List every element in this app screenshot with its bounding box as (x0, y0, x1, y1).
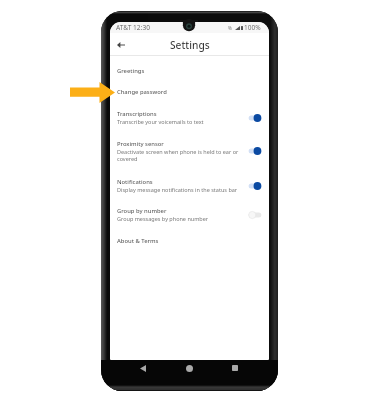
staticText: Deactivate screen when phone is held to … (117, 148, 244, 162)
staticText: Group messages by phone number (117, 215, 209, 222)
button[interactable]: Notifications (110, 176, 269, 195)
staticText: % (228, 25, 232, 31)
button[interactable]: Group by number (110, 205, 269, 224)
staticText: Settings (170, 38, 210, 52)
staticText: Transcribe your voicemails to text (117, 118, 204, 125)
button[interactable]: Change password (110, 82, 269, 102)
staticText: Group by number (117, 207, 167, 215)
staticText: Transcriptions (117, 110, 157, 118)
button[interactable]: Toggle (247, 113, 263, 123)
staticText: Display message notifications in the sta… (117, 186, 238, 193)
button[interactable]: Greetings (110, 61, 269, 81)
button[interactable]: Back (114, 38, 128, 52)
button[interactable]: Proximity sensor (110, 138, 269, 164)
staticText: Notifications (117, 178, 153, 186)
button[interactable]: Toggle (247, 210, 263, 220)
staticText: Change password (117, 88, 167, 96)
button[interactable]: Back (138, 363, 148, 373)
button[interactable]: About & Terms (110, 231, 269, 251)
staticText: Proximity sensor (117, 140, 164, 148)
staticText: Greetings (117, 67, 145, 75)
button[interactable]: Toggle (247, 146, 263, 156)
staticText: About & Terms (117, 237, 159, 245)
button[interactable]: Toggle (247, 181, 263, 191)
button[interactable]: Home (184, 363, 194, 373)
staticText: 100% (244, 23, 261, 32)
button[interactable]: Transcriptions (110, 108, 269, 127)
staticText: AT&T 12:30 (116, 23, 150, 32)
button[interactable]: Recent apps (230, 363, 240, 373)
